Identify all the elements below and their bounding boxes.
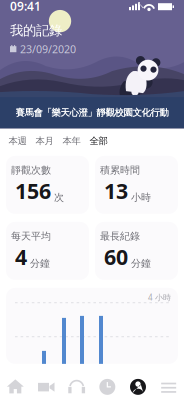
staticText: 次: [54, 191, 64, 204]
button[interactable]: Audio: [61, 372, 92, 400]
staticText: 09:41: [10, 0, 41, 14]
button[interactable]: Video: [31, 372, 61, 400]
staticText: 分鐘: [30, 257, 50, 270]
staticText: 4 小時: [148, 292, 171, 303]
staticText: 賽馬會「樂天心澄」靜觀校園文化行動: [15, 107, 168, 118]
staticText: 本年: [62, 135, 80, 147]
button[interactable]: 全部: [85, 128, 112, 153]
staticText: 156: [15, 176, 51, 205]
staticText: 積累時間: [100, 164, 140, 176]
button[interactable]: 積累時間: [95, 156, 178, 214]
button[interactable]: Home: [0, 372, 31, 400]
staticText: 60: [104, 242, 128, 271]
button[interactable]: 最長紀錄: [95, 222, 178, 280]
button[interactable]: 本月: [31, 128, 58, 153]
staticText: 分鐘: [131, 257, 151, 270]
staticText: 23/09/2020: [20, 42, 76, 56]
staticText: 4: [15, 242, 27, 271]
button[interactable]: Timer: [92, 372, 123, 400]
staticText: 最長紀錄: [100, 230, 140, 242]
staticText: 本月: [35, 135, 53, 147]
staticText: 小時: [131, 191, 151, 204]
staticText: 我的記錄: [10, 22, 62, 39]
staticText: 靜觀次數: [11, 164, 51, 176]
button[interactable]: 每天平均: [6, 222, 89, 280]
staticText: 每天平均: [11, 230, 51, 242]
staticText: 本週: [8, 135, 26, 147]
staticText: 全部: [89, 135, 107, 147]
button[interactable]: 本年: [58, 128, 85, 153]
button[interactable]: Profile: [123, 372, 153, 400]
button[interactable]: 靜觀次數: [6, 156, 89, 214]
staticText: 13: [104, 176, 128, 205]
button[interactable]: 本週: [4, 128, 31, 153]
button[interactable]: More: [153, 372, 184, 400]
